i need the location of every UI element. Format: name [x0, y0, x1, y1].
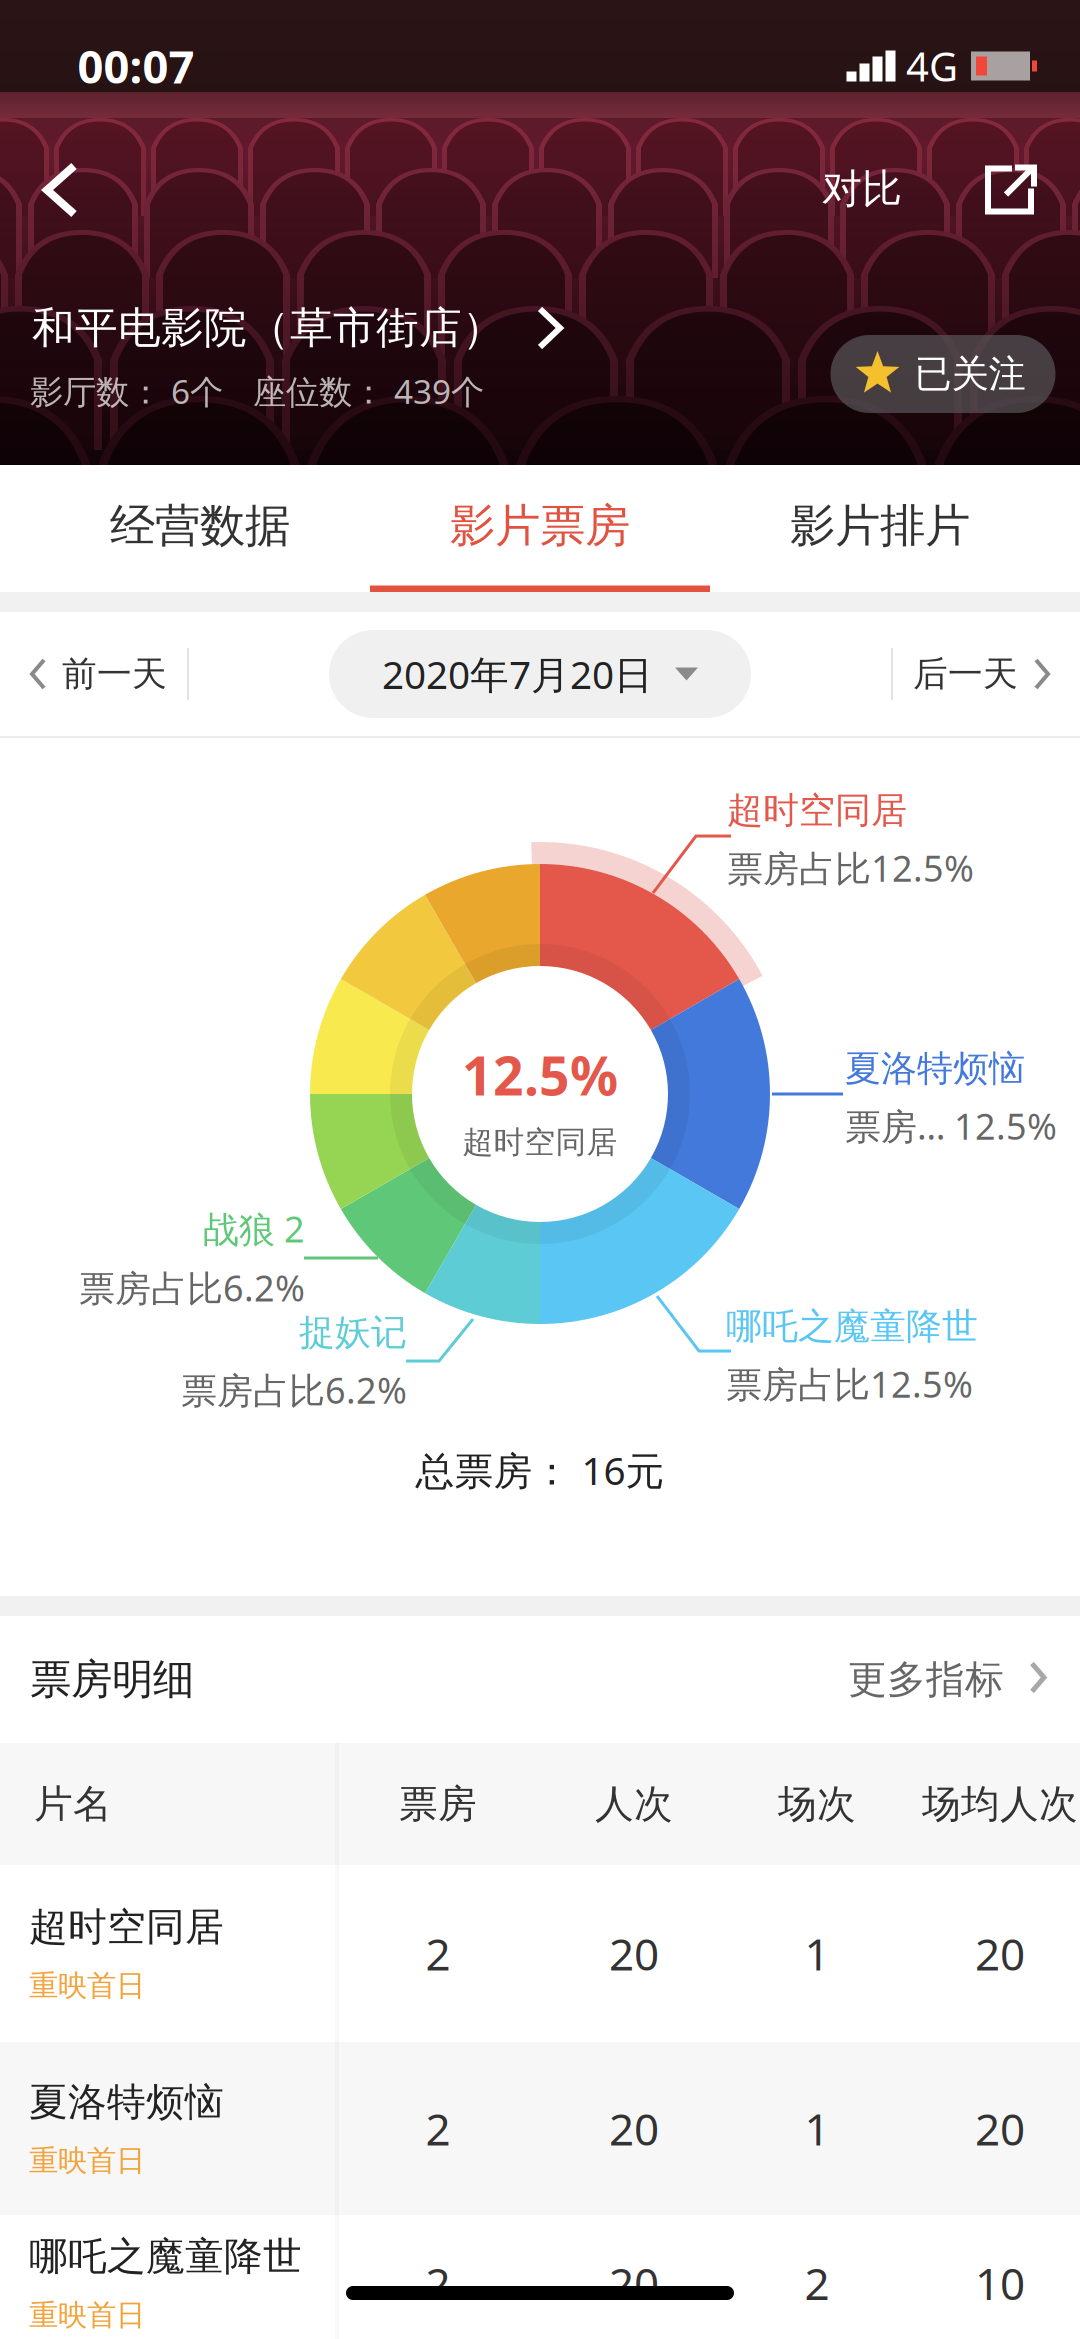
button[interactable]: 超时空同居	[0, 1865, 1080, 2042]
staticText: 场均人次	[922, 1780, 1078, 1828]
staticText: 人次	[595, 1780, 673, 1828]
staticText: 和平电影院（草市街店）	[32, 301, 505, 355]
staticText: 1	[804, 1923, 829, 1983]
staticText: 重映首日	[29, 1967, 145, 2004]
staticText: 20	[609, 2253, 659, 2313]
staticText: 12.5%	[462, 1038, 618, 1111]
staticText: 哪吒之魔童降世	[726, 1304, 978, 1349]
staticText: 战狼 2	[203, 1204, 305, 1253]
button[interactable]: 更多指标	[848, 1655, 1052, 1704]
staticText: 经营数据	[110, 497, 290, 554]
staticText: 重映首日	[29, 2297, 145, 2334]
staticText: 2	[425, 2098, 450, 2158]
staticText: 重映首日	[29, 2142, 145, 2179]
button[interactable]: 对比	[800, 140, 924, 238]
button[interactable]: 哪吒之魔童降世	[0, 2215, 1080, 2339]
staticText: 超时空同居	[462, 1123, 617, 1162]
staticText: 票房占比12.5%	[727, 843, 974, 892]
staticText: 更多指标	[848, 1655, 1004, 1704]
staticText: 总票房： 16元	[415, 1444, 664, 1496]
button[interactable]: 夏洛特烦恼	[0, 2042, 1080, 2215]
staticText: 20	[609, 1923, 659, 1983]
button[interactable]: 2020年7月20日	[329, 630, 751, 718]
staticText: 场次	[778, 1780, 856, 1828]
staticText: 票房明细	[30, 1653, 194, 1706]
staticText: 捉妖记	[299, 1310, 407, 1355]
button[interactable]: 经营数据	[30, 465, 370, 587]
staticText: 2	[425, 2253, 450, 2313]
staticText: 影片票房	[450, 497, 630, 554]
staticText: 超时空同居	[727, 788, 907, 833]
staticText: 票房占比12.5%	[726, 1359, 973, 1408]
staticText: 20	[609, 2098, 659, 2158]
staticText: 2	[425, 1923, 450, 1983]
staticText: 票房	[399, 1780, 477, 1828]
staticText: 哪吒之魔童降世	[29, 2232, 302, 2281]
button[interactable]: 影片票房	[370, 465, 710, 587]
staticText: 20	[975, 2098, 1025, 2158]
staticText: 影厅数： 6个 座位数： 439个	[30, 368, 484, 414]
button[interactable]: 和平电影院（草市街店）	[32, 298, 632, 358]
staticText: 1	[804, 2098, 829, 2158]
staticText: 票房占比6.2%	[79, 1263, 305, 1312]
staticText: 2020年7月20日	[382, 648, 653, 700]
staticText: 对比	[822, 164, 902, 214]
staticText: 票房占比6.2%	[181, 1365, 407, 1414]
staticText: 已关注	[914, 350, 1025, 397]
staticText: 超时空同居	[29, 1903, 224, 1951]
button[interactable]: 已关注	[830, 335, 1055, 413]
button[interactable]: 影片排片	[710, 465, 1050, 587]
staticText: 10	[975, 2253, 1025, 2313]
staticText: 20	[975, 1923, 1025, 1983]
staticText: 夏洛特烦恼	[29, 2078, 224, 2126]
staticText: 票房… 12.5%	[845, 1101, 1057, 1150]
staticText: 夏洛特烦恼	[845, 1046, 1025, 1091]
staticText: 4G	[906, 39, 958, 93]
button[interactable]: 前一天	[0, 612, 187, 736]
staticText: 00:07	[77, 35, 194, 97]
staticText: 前一天	[62, 652, 167, 696]
button[interactable]: 返回	[14, 134, 108, 246]
button[interactable]: 分享	[964, 144, 1056, 235]
staticText: 后一天	[913, 652, 1018, 696]
button[interactable]: 后一天	[893, 612, 1080, 736]
staticText: 影片排片	[790, 497, 970, 554]
staticText: 片名	[34, 1780, 112, 1828]
staticText: 2	[804, 2253, 829, 2313]
